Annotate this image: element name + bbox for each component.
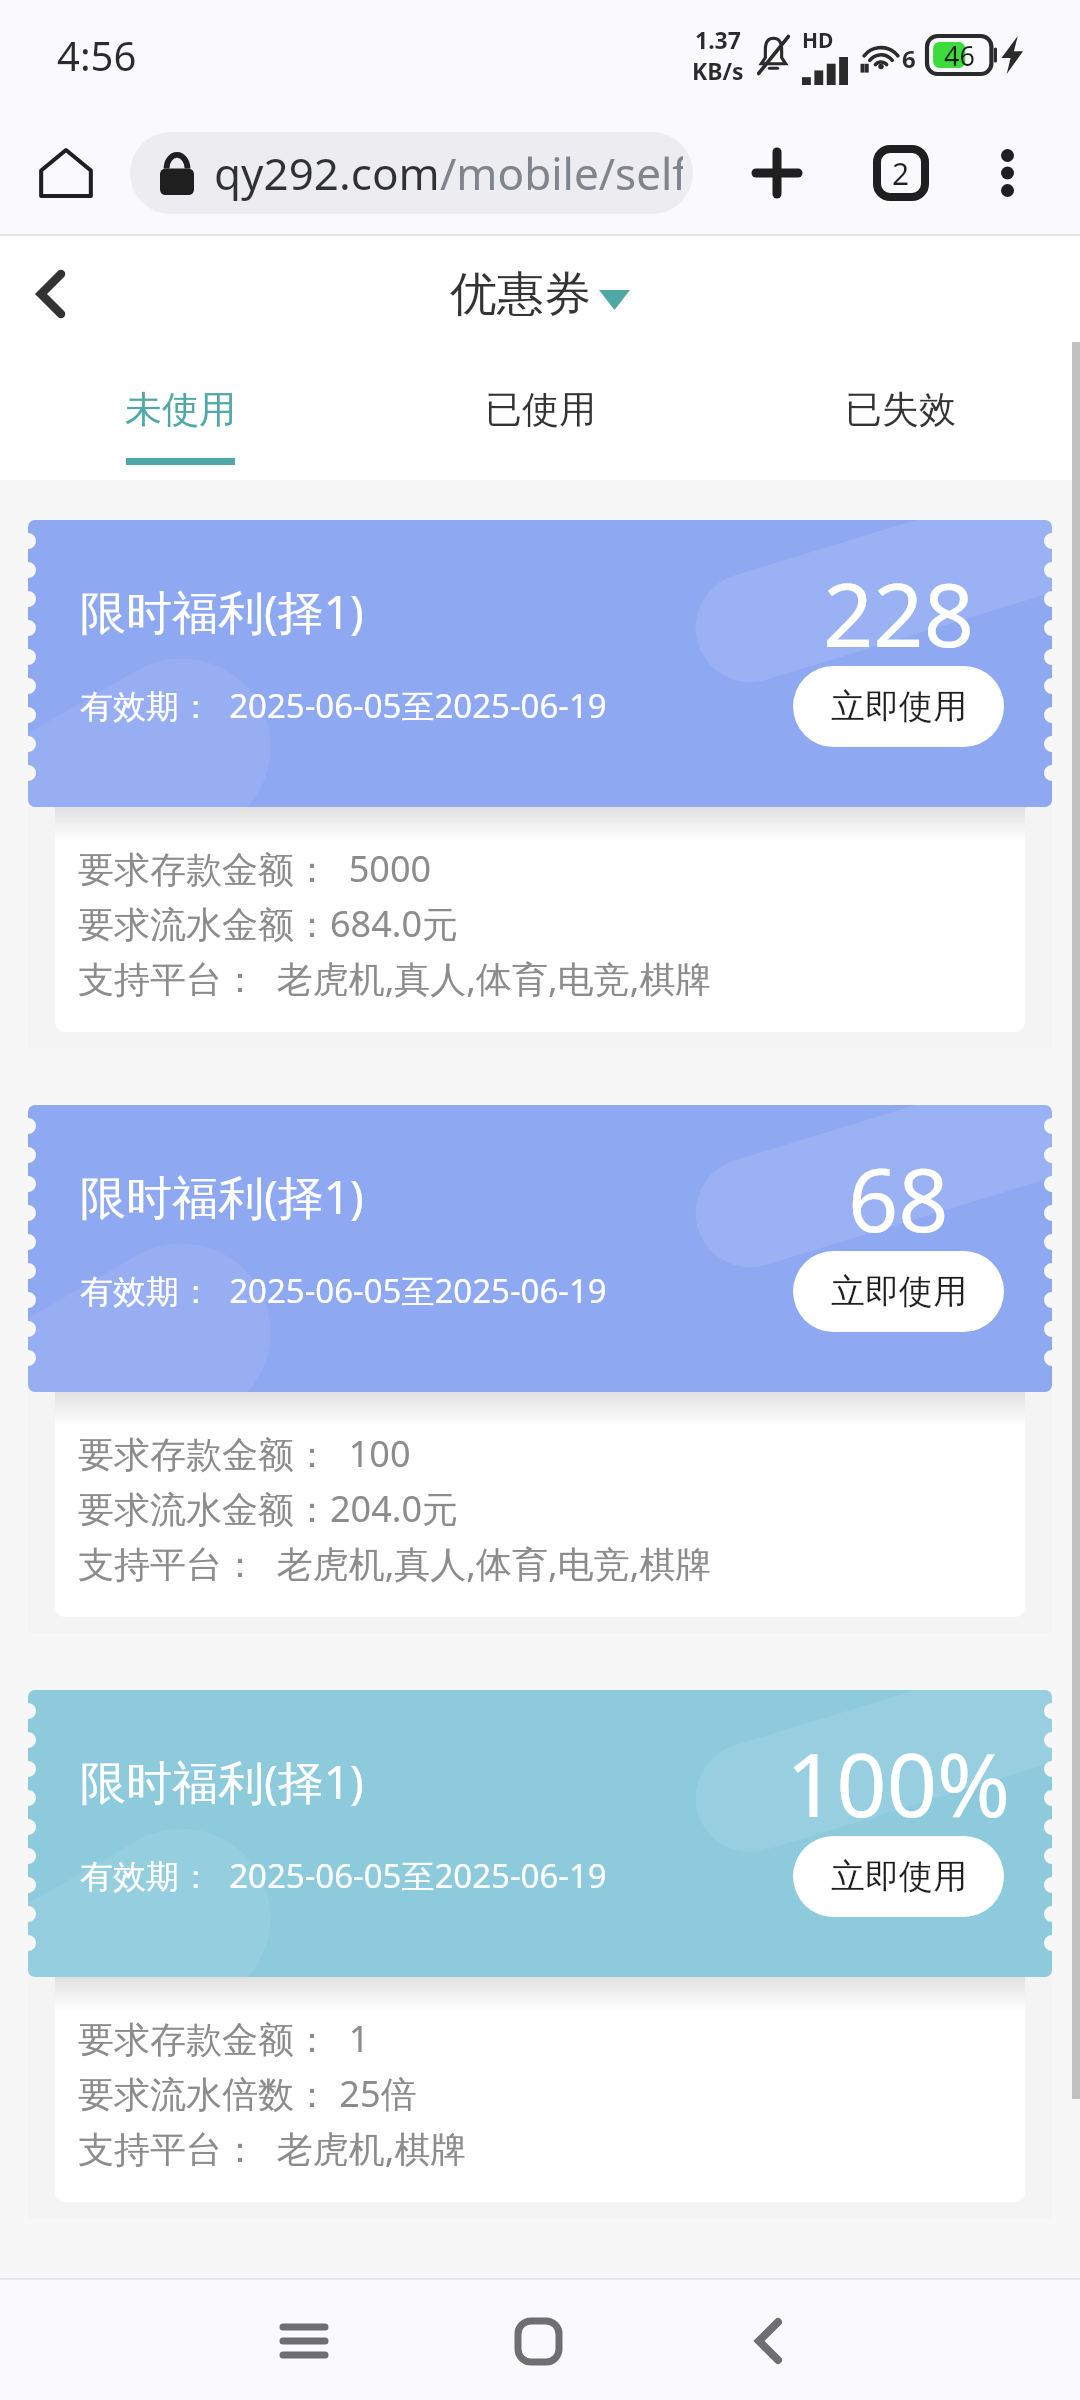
button[interactable]: 限时福利(择1)	[28, 1690, 1052, 2218]
staticText: 要求流水金额：204.0元	[78, 1484, 459, 1533]
staticText: 已使用	[485, 386, 596, 433]
staticText: 要求存款金额： 100	[78, 1429, 411, 1478]
staticText: 立即使用	[831, 1270, 967, 1313]
staticText: 100%	[786, 1723, 1011, 1843]
staticText: 有效期： 2025-06-05至2025-06-19	[80, 1268, 607, 1313]
staticText: 228	[823, 553, 975, 673]
button[interactable]: More options	[971, 137, 1043, 209]
staticText: 6	[902, 42, 916, 75]
staticText: 限时福利(择1)	[80, 1750, 364, 1813]
button[interactable]: Back	[11, 254, 91, 334]
staticText: qy292.com	[214, 143, 440, 203]
button[interactable]: 已使用	[360, 352, 720, 480]
staticText: 要求流水倍数： 25倍	[78, 2069, 417, 2118]
staticText: 4:56	[57, 28, 137, 82]
button[interactable]: Home	[483, 2286, 593, 2396]
button[interactable]: Recent apps	[249, 2286, 359, 2396]
button[interactable]: Back	[713, 2286, 823, 2396]
staticText: 要求存款金额： 5000	[78, 844, 432, 893]
staticText: 未使用	[125, 386, 236, 433]
staticText: 优惠券	[450, 265, 591, 324]
staticText: 有效期： 2025-06-05至2025-06-19	[80, 1853, 607, 1898]
staticText: 1.37	[695, 24, 741, 55]
button[interactable]: 立即使用	[793, 1251, 1004, 1332]
staticText: 限时福利(择1)	[80, 1165, 364, 1228]
staticText: 支持平台： 老虎机,真人,体育,电竞,棋牌	[78, 1539, 712, 1588]
staticText: 支持平台： 老虎机,真人,体育,电竞,棋牌	[78, 954, 712, 1003]
button[interactable]: qy292.com	[130, 132, 693, 214]
staticText: 46	[944, 37, 975, 74]
staticText: 立即使用	[831, 1855, 967, 1898]
staticText: 支持平台： 老虎机,棋牌	[78, 2124, 467, 2173]
staticText: 2	[892, 153, 910, 194]
staticText: 立即使用	[831, 685, 967, 728]
staticText: HD	[802, 26, 834, 55]
staticText: 68	[848, 1138, 949, 1258]
staticText: 已失效	[845, 386, 956, 433]
button[interactable]: Home	[26, 133, 106, 213]
button[interactable]: 限时福利(择1)	[28, 520, 1052, 1048]
staticText: 有效期： 2025-06-05至2025-06-19	[80, 683, 607, 728]
button[interactable]: 限时福利(择1)	[28, 1105, 1052, 1633]
button[interactable]: 立即使用	[793, 1836, 1004, 1917]
staticText: /mobile/self(	[440, 143, 683, 203]
button[interactable]: 立即使用	[793, 666, 1004, 747]
button[interactable]: 未使用	[0, 352, 360, 480]
button[interactable]: Tabs	[861, 133, 941, 213]
button[interactable]: 已失效	[720, 352, 1080, 480]
staticText: KB/s	[692, 55, 744, 86]
button[interactable]: 优惠券	[450, 265, 630, 324]
staticText: 限时福利(择1)	[80, 580, 364, 643]
staticText: 要求流水金额：684.0元	[78, 899, 459, 948]
button[interactable]: New tab	[737, 133, 817, 213]
staticText: 要求存款金额： 1	[78, 2014, 370, 2063]
